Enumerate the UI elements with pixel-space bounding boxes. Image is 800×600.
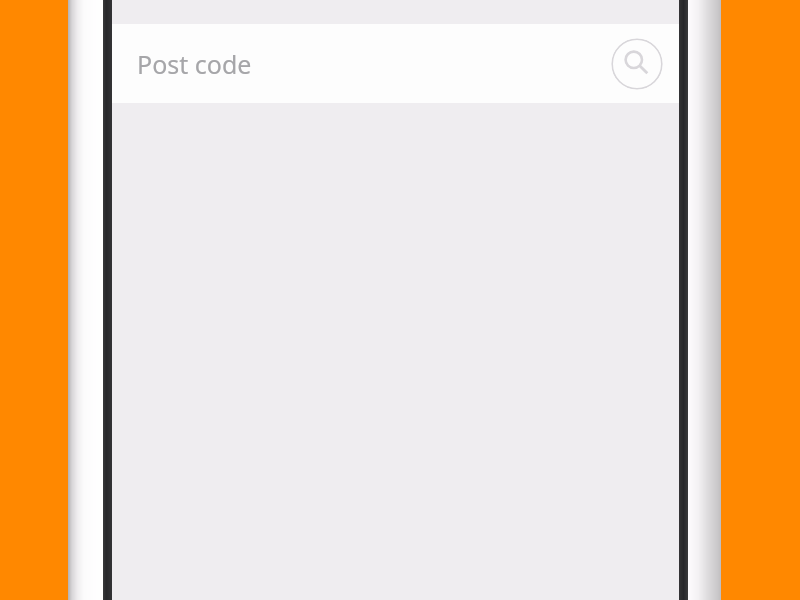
button[interactable]: Search [611,38,663,90]
button[interactable]: Post code [112,24,679,103]
staticText: Post code [137,47,252,81]
